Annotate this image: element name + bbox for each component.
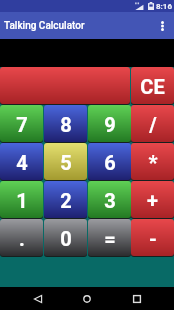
button[interactable]: . (0, 219, 43, 257)
button[interactable]: 6 (88, 143, 131, 181)
button[interactable]: 5 (44, 143, 87, 181)
staticText: . (19, 227, 25, 250)
button[interactable]: * (131, 143, 174, 181)
button[interactable]: = (88, 219, 131, 257)
staticText: 1 (16, 189, 28, 212)
button[interactable]: 8 (44, 105, 87, 143)
staticText: 7 (16, 113, 28, 136)
staticText: CE (140, 75, 165, 98)
staticText: 6 (104, 151, 116, 174)
staticText: 0 (60, 227, 72, 250)
button[interactable]: Back (26, 287, 50, 310)
button[interactable]: - (131, 219, 174, 257)
button[interactable]: Home (75, 287, 99, 310)
staticText: = (104, 227, 116, 250)
staticText: 8 (60, 113, 72, 136)
button[interactable]: 4 (0, 143, 43, 181)
staticText: 3 (104, 189, 116, 212)
button[interactable]: More options (150, 14, 174, 38)
staticText: Talking Calculator (4, 20, 85, 32)
button[interactable]: 0 (44, 219, 87, 257)
button[interactable]: 2 (44, 181, 87, 219)
staticText: 9 (104, 113, 116, 136)
staticText: * (148, 151, 158, 174)
button[interactable]: 7 (0, 105, 43, 143)
staticText: 8:16 (156, 2, 173, 11)
button[interactable]: Recents (125, 287, 149, 310)
staticText: 5 (60, 151, 72, 174)
staticText: + (147, 189, 158, 212)
staticText: / (149, 113, 157, 136)
button[interactable]: + (131, 181, 174, 219)
staticText: - (149, 227, 157, 250)
button[interactable]: 9 (88, 105, 131, 143)
staticText: 4 (16, 151, 28, 174)
button[interactable]: / (131, 105, 174, 143)
button[interactable]: 1 (0, 181, 43, 219)
button[interactable] (0, 67, 130, 105)
button[interactable]: CE (131, 67, 174, 105)
button[interactable]: 3 (88, 181, 131, 219)
staticText: 2 (60, 189, 72, 212)
